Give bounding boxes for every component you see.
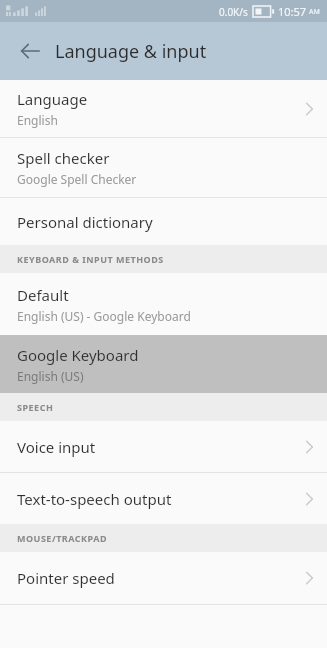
button[interactable]: Voice input xyxy=(0,421,327,472)
staticText: Google Spell Checker xyxy=(17,171,137,187)
staticText: Default xyxy=(17,285,69,305)
button[interactable]: Spell checker xyxy=(0,138,327,197)
staticText: Personal dictionary xyxy=(17,212,153,232)
button[interactable]: Google Keyboard xyxy=(0,335,327,393)
staticText: English (US) - Google Keyboard xyxy=(17,308,191,324)
button[interactable]: Text-to-speech output xyxy=(0,473,327,524)
staticText: Language & input xyxy=(55,39,207,64)
staticText: Pointer speed xyxy=(17,568,115,588)
staticText: MOUSE/TRACKPAD xyxy=(17,532,107,544)
staticText: English xyxy=(17,112,58,128)
button[interactable]: Pointer speed xyxy=(0,552,327,604)
staticText: 10:57 xyxy=(278,4,307,19)
staticText: AM xyxy=(309,7,320,17)
staticText: 0.0K/s xyxy=(219,5,248,19)
button[interactable]: Language xyxy=(0,80,327,137)
staticText: Language xyxy=(17,89,88,109)
staticText: KEYBOARD & INPUT METHODS xyxy=(17,253,164,265)
staticText: Text-to-speech output xyxy=(17,489,172,509)
staticText: SPEECH xyxy=(17,401,54,413)
staticText: Google Keyboard xyxy=(17,345,139,365)
button[interactable]: Back xyxy=(10,31,50,71)
staticText: English (US) xyxy=(17,368,84,384)
staticText: Voice input xyxy=(17,437,96,457)
staticText: Spell checker xyxy=(17,148,110,168)
button[interactable]: Personal dictionary xyxy=(0,198,327,245)
button[interactable]: Default xyxy=(0,273,327,335)
